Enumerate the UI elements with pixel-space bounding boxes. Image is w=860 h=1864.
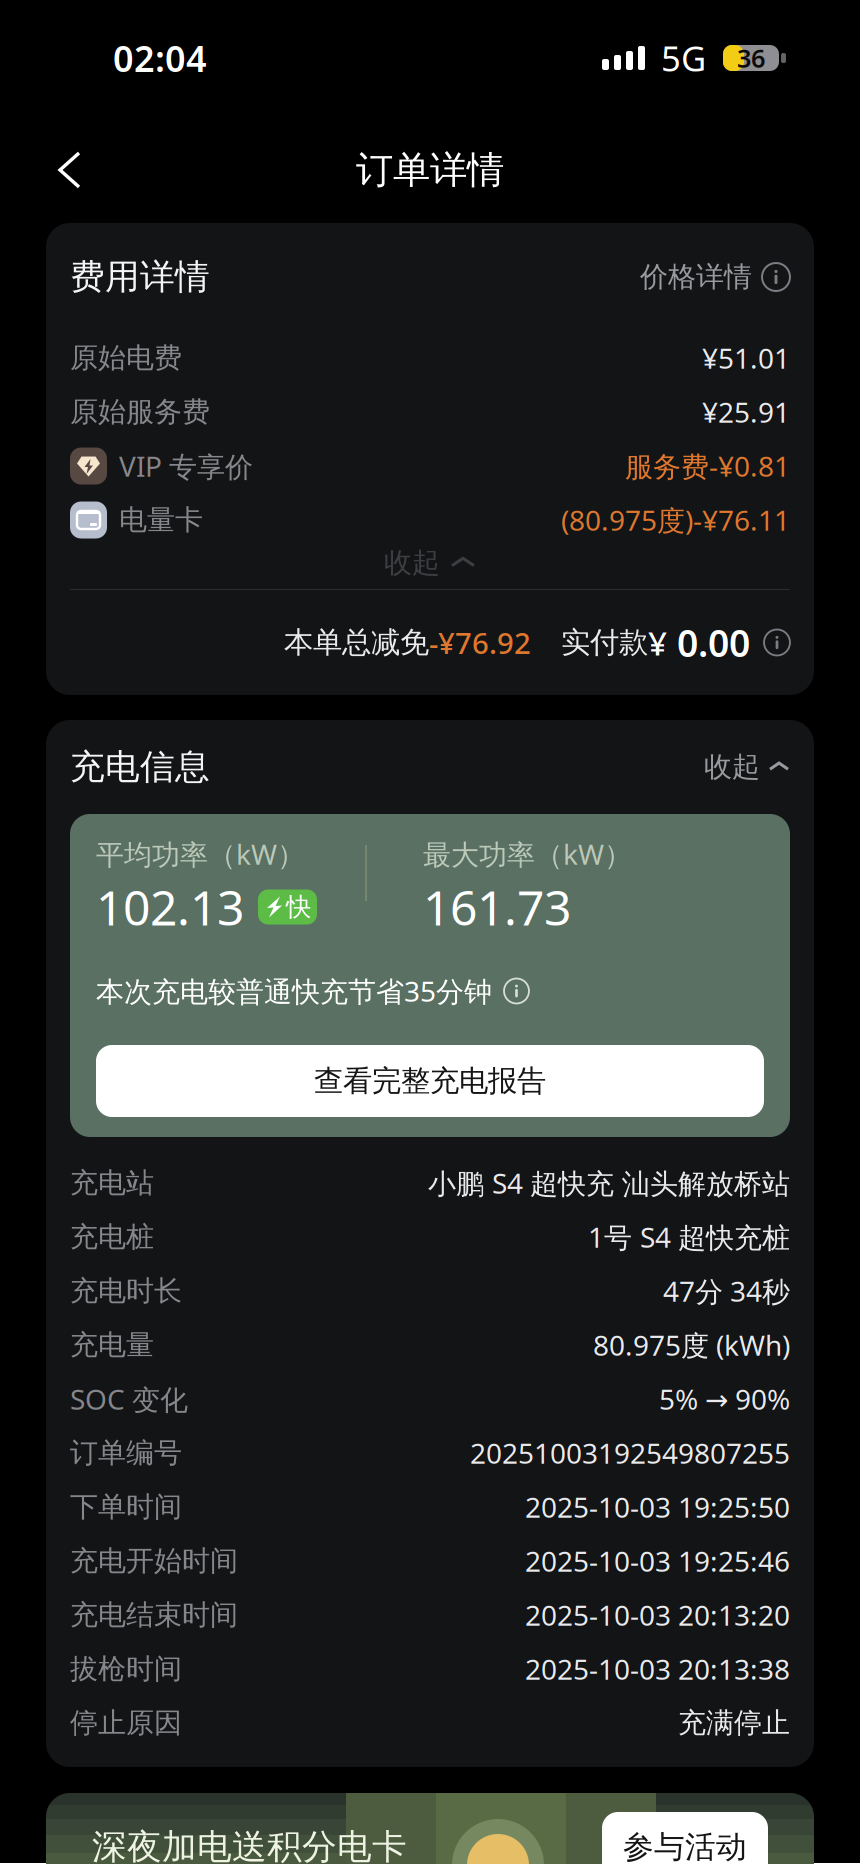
- staticText: VIP 专享价: [119, 447, 253, 485]
- button[interactable]: 查看完整充电报告: [96, 1045, 764, 1117]
- staticText: 80.975度 (kWh): [593, 1326, 790, 1364]
- staticText: 费用详情: [70, 256, 210, 298]
- staticText: 最大功率（kW）: [423, 835, 632, 873]
- button[interactable]: 收起: [70, 547, 790, 579]
- staticText: (80.975度)-¥76.11: [561, 501, 790, 539]
- staticText: 订单编号: [70, 1436, 182, 1470]
- staticText: 充电时长: [70, 1274, 182, 1308]
- staticText: 本次充电较普通快充节省35分钟: [96, 972, 492, 1010]
- staticText: 下单时间: [70, 1490, 182, 1524]
- staticText: ¥51.01: [702, 339, 790, 377]
- staticText: 20251003192549807255: [470, 1434, 790, 1472]
- staticText: 电量卡: [119, 503, 203, 537]
- staticText: 2025-10-03 19:25:46: [525, 1542, 790, 1580]
- staticText: 充电站: [70, 1166, 154, 1200]
- staticText: 参与活动: [623, 1828, 747, 1864]
- staticText: 充电信息: [70, 746, 210, 788]
- staticText: 1号 S4 超快充桩: [588, 1218, 790, 1256]
- button[interactable]: 深夜加电送积分电卡: [0, 1793, 860, 1864]
- staticText: 实付款: [561, 624, 648, 660]
- button[interactable]: 价格详情: [640, 260, 790, 294]
- staticText: 2025-10-03 20:13:20: [525, 1596, 790, 1634]
- staticText: 2025-10-03 19:25:50: [525, 1488, 790, 1526]
- staticText: -¥76.92: [429, 623, 531, 662]
- staticText: 充电开始时间: [70, 1544, 238, 1578]
- staticText: 原始服务费: [70, 395, 210, 429]
- staticText: 本单总减免: [284, 624, 429, 660]
- staticText: 收起: [704, 750, 760, 784]
- staticText: 原始电费: [70, 341, 182, 375]
- button[interactable]: Back: [34, 130, 105, 210]
- staticText: 价格详情: [640, 260, 752, 294]
- staticText: 充电量: [70, 1328, 154, 1362]
- staticText: 小鹏 S4 超快充 汕头解放桥站: [428, 1164, 790, 1202]
- staticText: ¥25.91: [702, 393, 790, 431]
- staticText: 5G: [661, 35, 706, 81]
- staticText: 0.00: [667, 618, 750, 667]
- staticText: 快: [286, 891, 311, 922]
- staticText: 平均功率（kW）: [96, 835, 305, 873]
- staticText: SOC 变化: [70, 1380, 188, 1418]
- staticText: 充满停止: [678, 1706, 790, 1740]
- staticText: 47分 34秒: [663, 1272, 790, 1310]
- staticText: 充电桩: [70, 1220, 154, 1254]
- staticText: 收起: [384, 546, 440, 580]
- staticText: ¥: [648, 620, 667, 665]
- staticText: 36: [737, 41, 765, 75]
- staticText: 充电结束时间: [70, 1598, 238, 1632]
- staticText: 停止原因: [70, 1706, 182, 1740]
- staticText: 102.13: [96, 875, 244, 939]
- staticText: 02:04: [113, 34, 207, 82]
- staticText: 拔枪时间: [70, 1652, 182, 1686]
- staticText: 服务费-¥0.81: [625, 447, 790, 485]
- staticText: 2025-10-03 20:13:38: [525, 1650, 790, 1688]
- button[interactable]: 收起: [704, 750, 790, 784]
- staticText: 161.73: [423, 875, 571, 939]
- staticText: 订单详情: [356, 147, 504, 193]
- staticText: 深夜加电送积分电卡: [92, 1826, 407, 1864]
- staticText: 5% → 90%: [659, 1380, 790, 1418]
- staticText: 查看完整充电报告: [314, 1063, 546, 1099]
